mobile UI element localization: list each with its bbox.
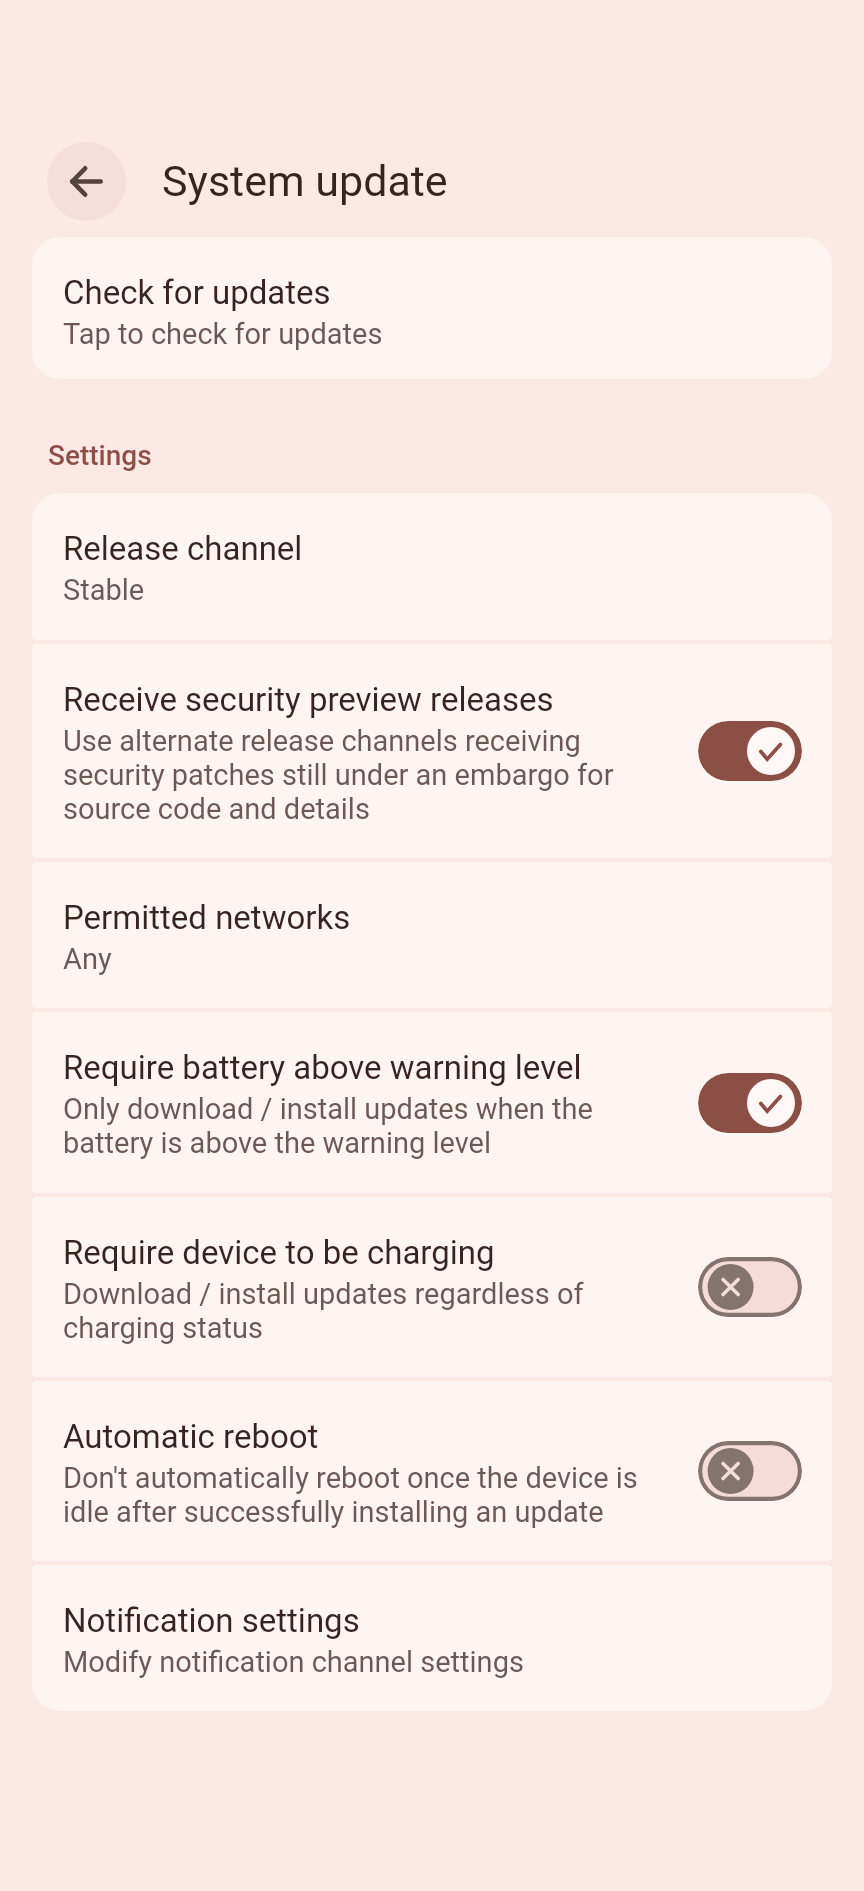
staticText: Check for updates bbox=[63, 272, 331, 312]
staticText: Notification settings bbox=[63, 1600, 360, 1640]
button[interactable]: Check for updates bbox=[32, 237, 832, 379]
staticText: Automatic reboot bbox=[63, 1416, 319, 1456]
staticText: Download / install updates regardless of… bbox=[63, 1277, 661, 1345]
button[interactable]: Notification settings bbox=[32, 1565, 832, 1711]
staticText: Receive security preview releases bbox=[63, 679, 554, 719]
staticText: Require battery above warning level bbox=[63, 1047, 582, 1087]
button[interactable]: Switch off bbox=[698, 1441, 802, 1501]
staticText: Settings bbox=[48, 439, 152, 472]
button[interactable]: Automatic reboot bbox=[32, 1381, 832, 1561]
staticText: Any bbox=[63, 942, 112, 976]
button[interactable]: Require device to be charging bbox=[32, 1197, 832, 1377]
button[interactable]: Switch on bbox=[698, 1073, 802, 1133]
button[interactable]: Permitted networks bbox=[32, 862, 832, 1008]
staticText: Stable bbox=[63, 573, 145, 607]
staticText: Modify notification channel settings bbox=[63, 1645, 524, 1679]
staticText: Use alternate release channels receiving… bbox=[63, 724, 661, 826]
staticText: Release channel bbox=[63, 528, 303, 568]
button[interactable]: Release channel bbox=[32, 493, 832, 640]
staticText: Don't automatically reboot once the devi… bbox=[63, 1461, 661, 1529]
button[interactable]: Require battery above warning level bbox=[32, 1012, 832, 1193]
button[interactable]: Receive security preview releases bbox=[32, 644, 832, 858]
staticText: Only download / install updates when the… bbox=[63, 1092, 661, 1160]
button[interactable]: Switch off bbox=[698, 1257, 802, 1317]
staticText: Tap to check for updates bbox=[63, 317, 383, 351]
button[interactable]: Switch on bbox=[698, 721, 802, 781]
button[interactable]: Back bbox=[47, 142, 126, 221]
staticText: Permitted networks bbox=[63, 897, 351, 937]
staticText: System update bbox=[162, 156, 448, 206]
staticText: Require device to be charging bbox=[63, 1232, 495, 1272]
